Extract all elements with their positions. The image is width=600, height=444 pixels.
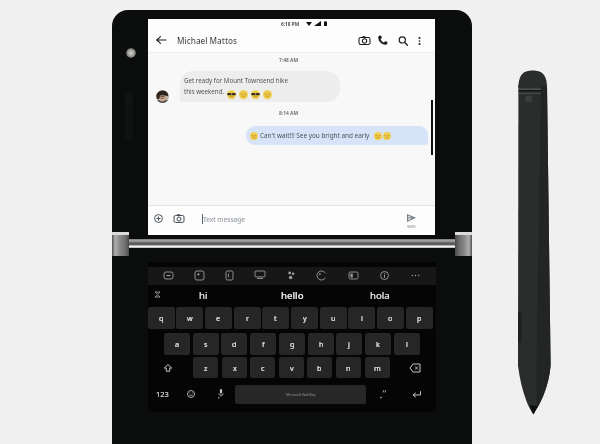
button[interactable]: g	[279, 333, 305, 355]
button[interactable]: Call	[373, 30, 392, 49]
staticText: p	[417, 313, 422, 323]
staticText: l	[406, 339, 408, 349]
staticText: this weekend.	[184, 87, 225, 95]
button[interactable]: Take picture	[171, 211, 186, 226]
button[interactable]: Michael Mattos	[177, 35, 238, 46]
staticText: hola	[370, 289, 390, 302]
button[interactable]: Theme	[311, 265, 331, 285]
button[interactable]: Back	[151, 30, 170, 49]
staticText: e	[216, 313, 221, 323]
button[interactable]: More options	[410, 31, 429, 50]
button[interactable]: Translate	[281, 265, 301, 285]
button[interactable]: Period	[372, 383, 394, 405]
button[interactable]: Expand	[150, 286, 164, 302]
staticText: h	[319, 339, 324, 349]
staticText: 7:48 AM	[279, 57, 299, 64]
button[interactable]: GIF	[219, 265, 239, 285]
button[interactable]: z	[193, 357, 218, 378]
button[interactable]: s	[193, 333, 219, 355]
button[interactable]: Get ready for Mount Townsend hike	[180, 71, 340, 102]
staticText: Text message	[203, 215, 246, 224]
button[interactable]: x	[222, 357, 247, 378]
staticText: SMS	[407, 223, 416, 229]
button[interactable]: k	[365, 333, 391, 355]
button[interactable]: Settings	[374, 265, 394, 285]
staticText: d	[232, 339, 237, 349]
button[interactable]: Comma	[210, 383, 232, 405]
staticText: hello	[281, 289, 304, 302]
button[interactable]: n	[336, 357, 361, 378]
staticText: q	[159, 313, 164, 323]
button[interactable]: f	[250, 333, 276, 355]
button[interactable]: o	[377, 307, 404, 329]
button[interactable]: c	[250, 357, 275, 378]
staticText: w	[187, 313, 193, 323]
button[interactable]: u	[320, 307, 347, 329]
button[interactable]: More	[405, 265, 425, 285]
button[interactable]: v	[279, 357, 304, 378]
button[interactable]: Search	[393, 31, 412, 50]
staticText: Can't wait!!! See you bright and early	[260, 131, 370, 140]
button[interactable]: a	[164, 333, 190, 355]
button[interactable]: b	[307, 357, 332, 378]
staticText: s	[204, 339, 208, 349]
staticText: g	[290, 339, 295, 349]
button[interactable]: hola	[352, 287, 408, 304]
staticText: t	[274, 313, 277, 323]
staticText: y	[303, 313, 307, 323]
button[interactable]: l	[394, 333, 420, 355]
staticText: 6:18 PM	[281, 21, 300, 28]
staticText: z	[204, 363, 208, 373]
button[interactable]: m	[365, 357, 390, 378]
button[interactable]: Send SMS	[402, 209, 421, 230]
button[interactable]: e	[205, 307, 232, 329]
button[interactable]: Space	[235, 385, 366, 404]
button[interactable]: Clipboard	[158, 265, 178, 285]
staticText: v	[290, 363, 294, 373]
staticText: a	[175, 339, 180, 349]
staticText: 123	[156, 389, 169, 399]
staticText: m	[374, 363, 381, 373]
button[interactable]: hi	[175, 287, 231, 304]
staticText: n	[346, 363, 351, 373]
staticText: x	[233, 363, 237, 373]
button[interactable]: i	[348, 307, 375, 329]
button[interactable]: r	[234, 307, 261, 329]
button[interactable]: hello	[264, 287, 320, 304]
staticText: b	[317, 363, 322, 373]
button[interactable]: Add attachment	[151, 211, 166, 226]
button[interactable]: Emoji	[180, 383, 201, 404]
button[interactable]: Numbers	[147, 383, 177, 404]
button[interactable]: Screen share	[250, 265, 270, 285]
staticText: u	[331, 313, 336, 323]
button[interactable]: Camera	[355, 31, 374, 50]
staticText: o	[388, 313, 393, 323]
staticText: Get ready for Mount Townsend hike	[184, 76, 288, 84]
button[interactable]: t	[262, 307, 289, 329]
button[interactable]: d	[221, 333, 247, 355]
button[interactable]: q	[148, 307, 175, 329]
staticText: c	[261, 363, 265, 373]
button[interactable]: Backspace	[396, 357, 434, 379]
staticText: j	[348, 339, 350, 349]
staticText: r	[246, 313, 249, 323]
staticText: 8:14 AM	[279, 110, 299, 117]
button[interactable]: Shift	[149, 357, 187, 379]
button[interactable]: w	[176, 307, 203, 329]
button[interactable]: y	[291, 307, 318, 329]
staticText: i	[361, 313, 363, 323]
button[interactable]: h	[308, 333, 334, 355]
staticText: Michael Mattos	[177, 35, 238, 46]
button[interactable]: Enter	[405, 383, 427, 405]
button[interactable]: Can't wait!!! See you bright and early	[246, 126, 428, 145]
staticText: Microsoft SwiftKey	[286, 392, 316, 397]
button[interactable]: p	[406, 307, 433, 329]
staticText: f	[262, 339, 265, 349]
button[interactable]: Michael Mattos avatar	[156, 90, 169, 103]
button[interactable]: j	[336, 333, 362, 355]
staticText: hi	[199, 289, 208, 302]
button[interactable]: Layout	[343, 265, 363, 285]
staticText: k	[376, 339, 380, 349]
button[interactable]: Stickers	[189, 265, 209, 285]
